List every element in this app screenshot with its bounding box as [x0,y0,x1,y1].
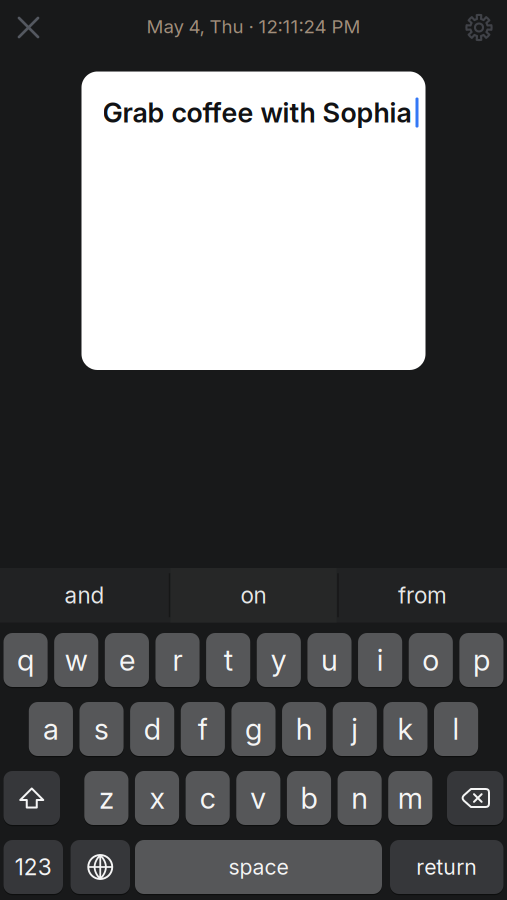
button[interactable]: u [307,633,351,687]
button[interactable]: on [170,568,336,622]
button[interactable]: h [282,702,326,756]
staticText: i [377,643,384,677]
staticText: on [240,582,266,609]
button[interactable]: v [236,771,280,825]
button[interactable]: i [358,633,402,687]
staticText: g [245,712,262,746]
button[interactable]: l [434,702,478,756]
button[interactable]: from [338,568,506,622]
button[interactable]: 123 [3,840,63,894]
button[interactable]: Next keyboard [70,840,130,894]
staticText: 123 [15,854,52,880]
button[interactable]: r [155,633,199,687]
button[interactable]: t [206,633,250,687]
staticText: k [397,712,413,746]
button[interactable]: n [338,771,382,825]
button[interactable]: z [84,771,128,825]
button[interactable]: m [388,771,432,825]
button[interactable]: g [231,702,275,756]
staticText: Grab coffee with Sophia [102,96,411,129]
button[interactable]: and [0,568,168,622]
staticText: s [94,712,109,746]
button[interactable]: c [186,771,230,825]
staticText: t [224,643,233,677]
staticText: u [321,643,338,677]
button[interactable]: o [409,633,453,687]
button[interactable]: s [79,702,124,756]
staticText: l [453,712,460,746]
button[interactable]: return [390,840,503,894]
staticText: w [65,643,88,677]
staticText: May 4, Thu · 12:11:24 PM [146,15,360,37]
staticText: d [144,712,161,746]
staticText: f [198,712,208,746]
button[interactable]: e [105,633,149,687]
staticText: n [351,781,368,815]
button[interactable]: Delete [447,771,503,825]
button[interactable]: Close [6,5,50,49]
button[interactable]: Shift [3,771,60,825]
staticText: p [473,643,490,677]
staticText: a [43,712,59,746]
staticText: m [398,781,423,815]
staticText: e [119,643,135,677]
staticText: space [228,854,288,880]
button[interactable]: q [3,633,48,687]
staticText: v [250,781,266,815]
staticText: r [172,643,182,677]
button[interactable]: a [29,702,73,756]
staticText: from [398,582,447,609]
button[interactable]: p [459,633,503,687]
button[interactable]: w [54,633,98,687]
button[interactable]: x [135,771,179,825]
staticText: z [99,781,114,815]
button[interactable]: b [287,771,331,825]
button[interactable]: j [333,702,377,756]
button[interactable]: f [181,702,225,756]
staticText: and [64,582,104,609]
button[interactable]: d [130,702,174,756]
button[interactable]: k [383,702,427,756]
staticText: y [271,643,287,677]
staticText: x [149,781,164,815]
button[interactable]: y [257,633,301,687]
staticText: c [200,781,216,815]
button[interactable]: Settings [457,5,501,49]
button[interactable]: space [135,840,382,894]
staticText: j [351,712,358,746]
staticText: b [300,781,317,815]
staticText: return [416,854,477,880]
staticText: q [17,643,34,677]
staticText: o [422,643,439,677]
staticText: h [296,712,313,746]
